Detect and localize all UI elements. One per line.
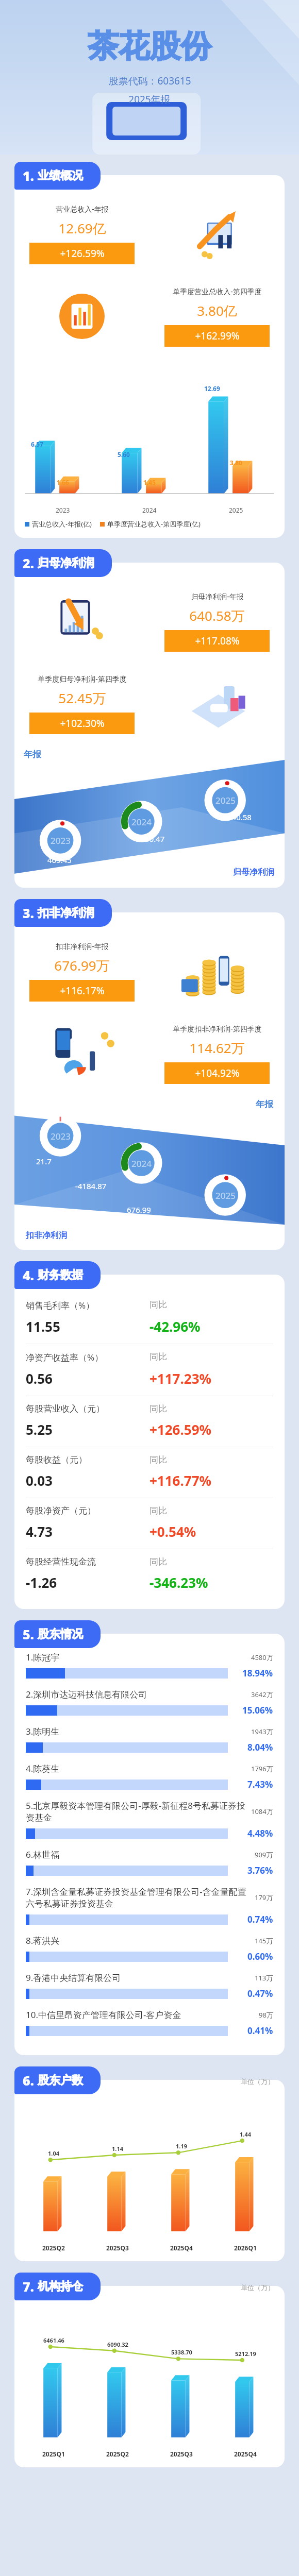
staticText: 2025: [229, 506, 243, 514]
button[interactable]: 9.香港中央结算有限公司: [14, 1972, 285, 2009]
staticText: 5.25: [26, 1420, 149, 1438]
button[interactable]: 单季度营业总收入-第四季度: [14, 275, 285, 358]
staticText: 股东情况: [38, 1627, 83, 1641]
button[interactable]: 6.: [14, 2066, 101, 2094]
staticText: 909万: [255, 1850, 273, 1859]
staticText: 3642万: [251, 1690, 273, 1699]
staticText: 4.陈葵生: [26, 1762, 247, 1774]
staticText: 4.73: [26, 1522, 149, 1540]
staticText: 11.55: [26, 1317, 149, 1335]
staticText: +104.92%: [195, 1066, 240, 1080]
staticText: +116.77%: [149, 1471, 273, 1489]
staticText: 2025年报: [128, 93, 171, 106]
staticText: 1943万: [251, 1727, 273, 1736]
staticText: 5338.70: [171, 2348, 192, 2356]
button[interactable]: 5.北京厚毅资本管理有限公司-厚毅-新征程8号私募证券投资基金: [14, 1800, 285, 1849]
staticText: 销售毛利率（%）: [26, 1299, 149, 1311]
button[interactable]: 每股营业收入（元）: [14, 1396, 285, 1447]
staticText: 3.80亿: [197, 301, 237, 320]
button[interactable]: 每股净资产（元）: [14, 1498, 285, 1549]
staticText: 114.62万: [189, 1039, 245, 1057]
button[interactable]: 3.: [14, 899, 112, 927]
staticText: 年报: [256, 1099, 273, 1110]
staticText: 3.76%: [247, 1865, 273, 1876]
button[interactable]: 每股收益（元）: [14, 1447, 285, 1498]
staticText: 2023: [56, 506, 70, 514]
staticText: 1.19: [176, 2142, 187, 2150]
staticText: 4580万: [251, 1653, 273, 1662]
staticText: 1.陈冠宇: [26, 1651, 247, 1663]
staticText: 113万: [255, 1973, 273, 1982]
staticText: 5.60: [118, 450, 130, 459]
button[interactable]: 3.陈明生: [14, 1725, 285, 1762]
staticText: 2025Q3: [170, 2450, 193, 2458]
staticText: 5.: [23, 1625, 34, 1643]
staticText: +126.59%: [60, 247, 105, 260]
button[interactable]: 4.陈葵生: [14, 1762, 285, 1800]
button[interactable]: 7.: [14, 2273, 101, 2300]
button[interactable]: 销售毛利率（%）: [14, 1292, 285, 1344]
staticText: 2024: [131, 816, 152, 828]
staticText: 单季度扣非净利润-第四季度: [173, 1024, 262, 1033]
staticText: 179万: [255, 1893, 273, 1902]
staticText: 1.66: [57, 478, 69, 486]
staticText: 7.深圳含金量私募证券投资基金管理有限公司-含金量配置六号私募证券投资基金: [26, 1886, 251, 1909]
button[interactable]: 单季度扣非净利润-第四季度: [14, 1012, 285, 1095]
staticText: 5.北京厚毅资本管理有限公司-厚毅-新征程8号私募证券投资基金: [26, 1800, 247, 1823]
staticText: 每股营业收入（元）: [26, 1403, 149, 1414]
staticText: 2025Q4: [234, 2450, 257, 2458]
staticText: -346.23%: [149, 1573, 273, 1591]
staticText: 9.香港中央结算有限公司: [26, 1972, 251, 1984]
staticText: 扣非净利润: [26, 1230, 67, 1241]
staticText: 同比: [149, 1403, 273, 1414]
staticText: 0.03: [26, 1471, 149, 1489]
button[interactable]: 每股经营性现金流: [14, 1549, 285, 1600]
button[interactable]: 扣非净利润-年报: [14, 930, 285, 1012]
button[interactable]: 10.中信里昂资产管理有限公司-客户资金: [14, 2009, 285, 2046]
button[interactable]: 4.: [14, 1261, 101, 1289]
staticText: +116.17%: [60, 984, 105, 997]
staticText: 676.99万: [54, 956, 110, 975]
staticText: 0.47%: [247, 1988, 273, 1999]
staticText: 归母净利润: [38, 556, 94, 570]
staticText: 同比: [149, 1351, 273, 1362]
staticText: 2025Q4: [170, 2244, 193, 2252]
staticText: -1.26: [26, 1573, 149, 1591]
staticText: 营业总收入-年报(亿): [32, 519, 92, 529]
staticText: 单季度归母净利润-第四季度: [38, 674, 127, 684]
button[interactable]: 单季度归母净利润-第四季度: [14, 663, 285, 745]
staticText: 2025Q1: [42, 2450, 65, 2458]
staticText: 6.林世福: [26, 1849, 251, 1860]
staticText: 8.04%: [247, 1741, 273, 1753]
button[interactable]: 1.陈冠宇: [14, 1651, 285, 1688]
staticText: 扣非净利润-年报: [56, 941, 109, 951]
staticText: 2025Q2: [106, 2450, 129, 2458]
button[interactable]: 归母净利润-年报: [14, 580, 285, 663]
button[interactable]: 8.蒋洪兴: [14, 1935, 285, 1972]
staticText: 6.57: [31, 440, 43, 448]
button[interactable]: 净资产收益率（%）: [14, 1344, 285, 1396]
staticText: 3.陈明生: [26, 1725, 247, 1737]
staticText: 3.: [23, 904, 34, 922]
staticText: 净资产收益率（%）: [26, 1351, 149, 1363]
staticText: 2.深圳市达迈科技信息有限公司: [26, 1688, 247, 1700]
button[interactable]: 营业总收入-年报: [14, 193, 285, 275]
button[interactable]: 2.深圳市达迈科技信息有限公司: [14, 1688, 285, 1725]
staticText: 3.80: [230, 459, 242, 467]
staticText: 676.99: [127, 1205, 151, 1215]
staticText: 7.: [23, 2278, 34, 2295]
staticText: 640.58: [227, 812, 252, 822]
staticText: +102.30%: [60, 717, 105, 730]
staticText: 1.44: [240, 2130, 251, 2138]
staticText: 1.14: [112, 2145, 123, 2153]
button[interactable]: 7.深圳含金量私募证券投资基金管理有限公司-含金量配置六号私募证券投资基金: [14, 1886, 285, 1935]
button[interactable]: 1.: [14, 162, 101, 190]
button[interactable]: 6.林世福: [14, 1849, 285, 1886]
button[interactable]: 5.: [14, 1620, 101, 1648]
button[interactable]: 2.: [14, 549, 112, 577]
staticText: -4184.87: [75, 1181, 107, 1191]
staticText: 0.74%: [247, 1913, 273, 1925]
staticText: 单季度营业总收入-第四季度: [173, 286, 262, 296]
staticText: +117.23%: [149, 1369, 273, 1387]
staticText: 归母净利润: [233, 867, 274, 877]
